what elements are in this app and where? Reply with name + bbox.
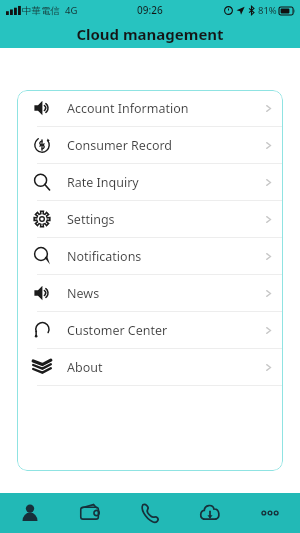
staticText: Account Information bbox=[67, 100, 264, 117]
button[interactable]: Cloud bbox=[180, 493, 240, 533]
button[interactable]: Settings bbox=[17, 201, 283, 237]
button[interactable]: Wallet bbox=[60, 493, 120, 533]
button[interactable]: Account Information bbox=[17, 90, 283, 126]
staticText: 81% bbox=[258, 4, 277, 17]
button[interactable]: Profile bbox=[0, 493, 60, 533]
staticText: About bbox=[67, 359, 264, 376]
button[interactable]: Rate Inquiry bbox=[17, 164, 283, 200]
staticText: 09:26 bbox=[137, 3, 163, 17]
button[interactable]: Notifications bbox=[17, 238, 283, 274]
staticText: Settings bbox=[67, 211, 264, 228]
button[interactable]: About bbox=[17, 349, 283, 385]
button[interactable]: Consumer Record bbox=[17, 127, 283, 163]
button[interactable]: Customer Center bbox=[17, 312, 283, 348]
staticText: News bbox=[67, 285, 264, 302]
staticText: Consumer Record bbox=[67, 137, 264, 154]
button[interactable]: Call bbox=[120, 493, 180, 533]
staticText: 中華電信 bbox=[22, 5, 60, 17]
staticText: 4G bbox=[65, 4, 78, 17]
button[interactable]: News bbox=[17, 275, 283, 311]
button[interactable]: More bbox=[240, 493, 300, 533]
staticText: Customer Center bbox=[67, 322, 264, 339]
staticText: Notifications bbox=[67, 248, 264, 265]
staticText: Rate Inquiry bbox=[67, 174, 264, 191]
staticText: Cloud management bbox=[76, 24, 224, 44]
